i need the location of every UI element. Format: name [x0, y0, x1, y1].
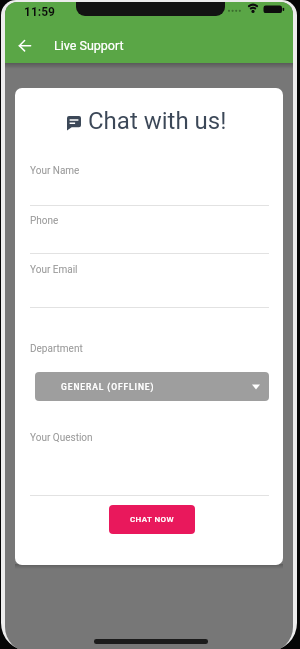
staticText: Department: [30, 343, 83, 355]
staticText: CHAT NOW: [130, 515, 174, 524]
staticText: Your Email: [30, 264, 78, 276]
staticText: GENERAL (OFFLINE): [61, 382, 155, 392]
staticText: 11:59: [24, 5, 55, 19]
staticText: Your Name: [30, 165, 80, 177]
staticText: Phone: [30, 215, 59, 227]
staticText: Chat with us!: [88, 107, 227, 135]
button[interactable]: CHAT NOW: [109, 505, 195, 534]
button[interactable]: [18, 38, 34, 54]
staticText: Your Question: [30, 432, 93, 444]
button[interactable]: GENERAL (OFFLINE): [35, 372, 269, 401]
staticText: Live Support: [54, 38, 124, 53]
